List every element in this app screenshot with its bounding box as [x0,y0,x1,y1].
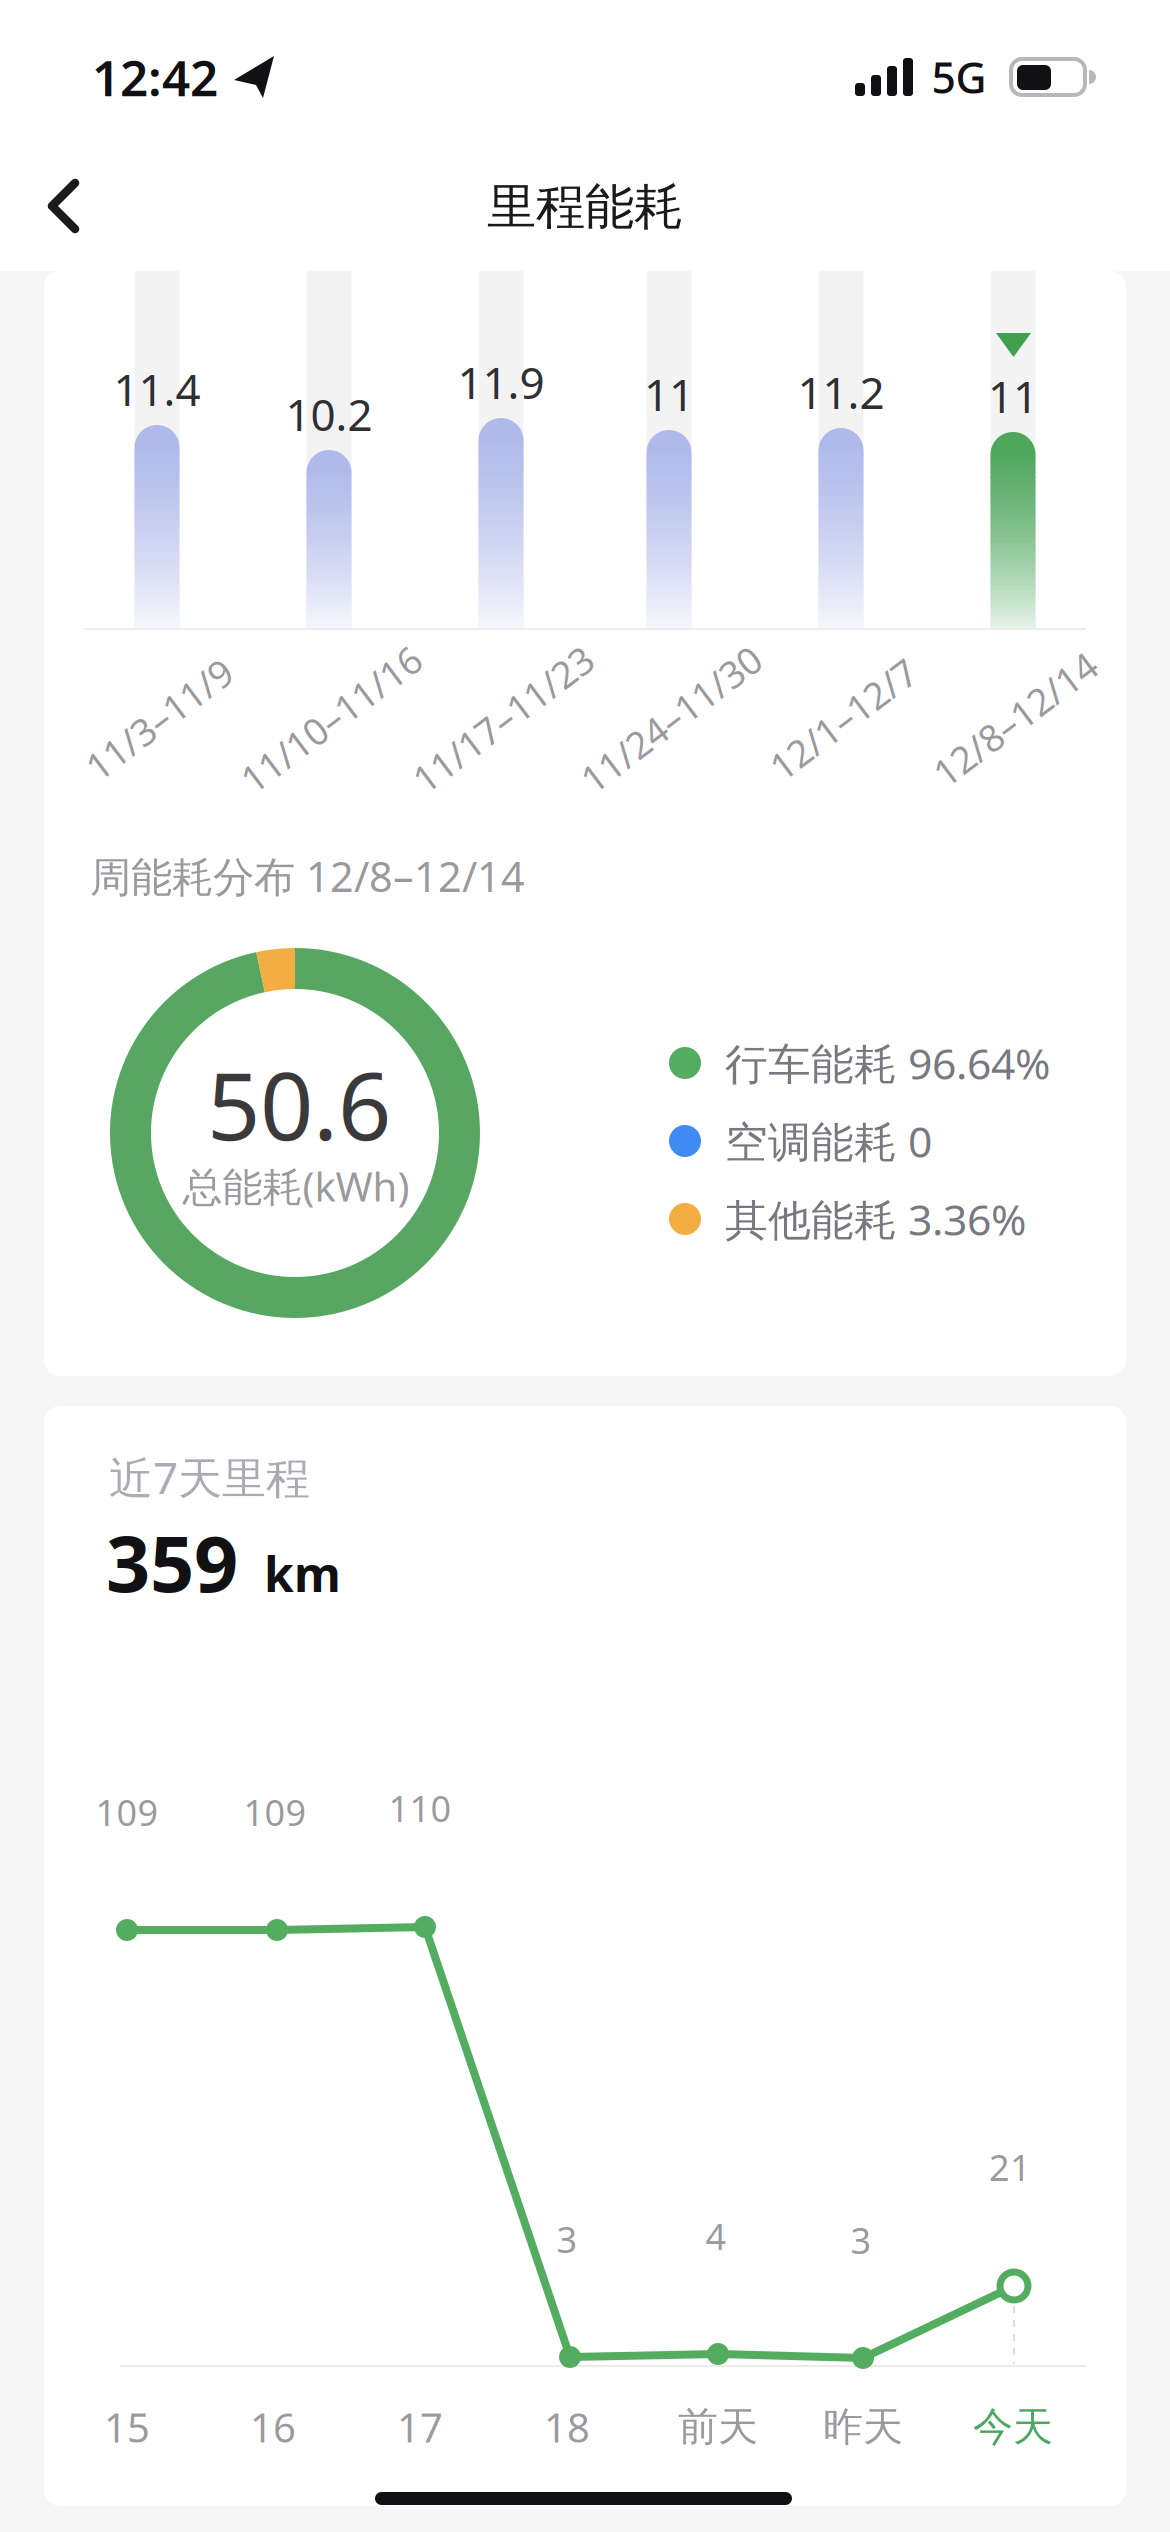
staticText: 11.4 [113,360,200,418]
staticText: km [264,1541,341,1605]
staticText: 12/1–12/7 [756,694,929,744]
staticText: 21 [989,2143,1031,2191]
staticText: 11/24–11/30 [563,694,778,744]
staticText: 11/17–11/23 [395,694,610,744]
staticText: 3 [850,2216,871,2264]
staticText: 周能耗分布 12/8–12/14 [90,849,525,903]
staticText: 18 [544,2400,590,2453]
staticText: 5G [931,49,986,105]
staticText: 12:42 [92,44,218,110]
staticText: 4 [705,2212,726,2260]
staticText: 昨天 [823,2402,903,2451]
staticText: 15 [104,2400,150,2453]
button[interactable] [24,166,104,246]
staticText: 前天 [678,2402,758,2451]
staticText: 行车能耗 96.64% [725,1035,1050,1091]
staticText: 近7天里程 [109,1448,310,1506]
staticText: 12/8–12/14 [918,694,1112,744]
staticText: 今天 [973,2402,1053,2451]
staticText: 109 [243,1788,306,1836]
staticText: 11 [988,367,1038,425]
staticText: 11.2 [797,363,884,421]
staticText: 50.6 [207,1042,391,1166]
staticText: 110 [388,1784,451,1832]
staticText: 11/3–11/9 [72,694,245,744]
staticText: 3 [556,2215,577,2263]
staticText: 11/10–11/16 [223,694,438,744]
staticText: 16 [250,2400,296,2453]
staticText: 11.9 [457,353,544,411]
staticText: 359 [106,1511,238,1613]
staticText: 17 [397,2400,443,2453]
staticText: 总能耗(kWh) [182,1159,409,1212]
staticText: 11 [644,365,694,423]
staticText: 10.2 [285,385,372,443]
staticText: 里程能耗 [487,177,683,237]
staticText: 空调能耗 0 [725,1113,932,1169]
staticText: 其他能耗 3.36% [725,1191,1026,1247]
staticText: 109 [95,1788,158,1836]
